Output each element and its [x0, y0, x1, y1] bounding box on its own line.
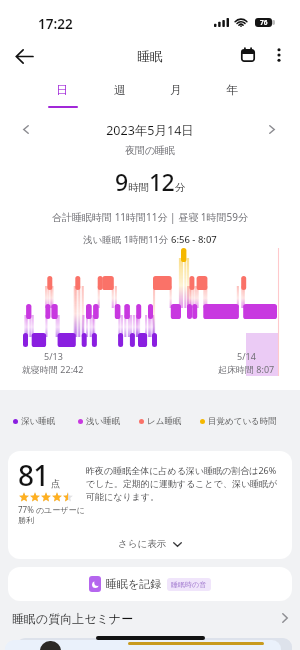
button[interactable] — [5, 640, 281, 650]
staticText: レム睡眠 — [147, 416, 182, 427]
staticText: 目覚めている時間 — [208, 416, 277, 427]
button[interactable]: 月 — [148, 82, 204, 110]
staticText: 深い睡眠 — [21, 416, 56, 427]
button[interactable]: Back — [8, 40, 40, 72]
staticText: 9 — [115, 166, 128, 197]
button[interactable]: Next day — [260, 117, 284, 141]
staticText: 76 — [260, 18, 268, 27]
button[interactable]: さらに表示 — [8, 533, 292, 555]
staticText: 月 — [170, 82, 182, 97]
staticText: 昨夜の睡眠全体に占める深い睡眠の割合は26%でした。定期的に運動することで、深い… — [86, 464, 285, 502]
button[interactable]: 睡眠の質向上セミナー — [12, 608, 288, 628]
staticText: 日 — [56, 82, 68, 97]
staticText: 睡眠の質向上セミナー — [12, 611, 134, 626]
staticText: 睡眠 — [0, 48, 300, 64]
button[interactable]: Previous day — [14, 117, 38, 141]
staticText: 6:56 - 8:07 — [171, 233, 217, 246]
staticText: 起床時間 8:07 — [218, 363, 275, 375]
button[interactable]: 日 — [34, 82, 90, 110]
staticText: 睡眠時の音 — [171, 580, 207, 589]
button[interactable]: 週 — [92, 82, 148, 110]
staticText: 週 — [114, 82, 126, 97]
staticText: 浅い睡眠 1時間11分 — [83, 233, 171, 246]
staticText: 5/13 — [44, 350, 63, 362]
staticText: さらに表示 — [118, 538, 167, 550]
staticText: 12 — [149, 166, 175, 197]
staticText: 時間 — [128, 181, 149, 194]
staticText: 浅い睡眠 — [86, 416, 121, 427]
staticText: 5/14 — [237, 350, 256, 362]
staticText: 17:22 — [38, 15, 73, 33]
button[interactable]: Calendar — [234, 41, 262, 69]
staticText: 77% のユーザーに 勝利 — [18, 504, 88, 525]
staticText: 81 — [18, 456, 49, 494]
staticText: 2023年5月14日 — [0, 122, 300, 139]
staticText: 年 — [226, 82, 238, 97]
staticText: 睡眠を記録 — [106, 577, 162, 591]
button[interactable]: 睡眠を記録 — [8, 567, 292, 601]
button[interactable]: 81 — [8, 451, 292, 559]
button[interactable]: More options — [265, 41, 293, 69]
button[interactable]: 年 — [204, 82, 260, 110]
staticText: 合計睡眠時間 11時間11分 | 昼寝 1時間59分 — [0, 210, 300, 224]
staticText: 夜間の睡眠 — [0, 144, 300, 157]
staticText: 点 — [51, 478, 61, 490]
staticText: 分 — [175, 181, 186, 194]
staticText: 就寝時間 22:42 — [22, 363, 84, 375]
